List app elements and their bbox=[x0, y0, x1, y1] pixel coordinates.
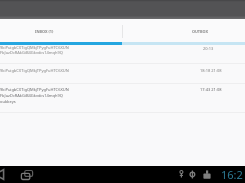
staticText: FbJuzDcRAkGiB4Gkvdcs14mqh9Q bbox=[0, 50, 63, 55]
staticText: OUTBOX bbox=[192, 29, 209, 34]
staticText: 16:2 bbox=[221, 167, 243, 182]
staticText: 9kiPuigbCXTigQMkjTPygFuHTC6XUN bbox=[0, 45, 69, 50]
staticText: 17:43 21:08 bbox=[200, 87, 222, 92]
button[interactable]: Back bbox=[0, 167, 9, 182]
staticText: 18:18 21:08 bbox=[200, 68, 222, 73]
button[interactable]: OUTBOX bbox=[122, 19, 245, 42]
button[interactable]: 9kiPuigbCXTigQMkjTPygFuHTC6XUN bbox=[0, 64, 245, 83]
staticText: INBOX (1) bbox=[35, 29, 54, 34]
staticText: oubkeys bbox=[0, 99, 16, 104]
button[interactable]: 9kiPuigbCXTigQMkjTPygFuHTC6XUN bbox=[0, 45, 245, 64]
staticText: 20:13 bbox=[203, 46, 214, 51]
other: Status bbox=[178, 169, 214, 180]
staticText: FbJuzDcRAkGiB4Gkvdcs14mqh9Q bbox=[0, 93, 63, 98]
button[interactable]: 9kiPuigbCXTigQMkjTPygFuHTC6XUN bbox=[0, 84, 245, 112]
button[interactable]: Recent apps bbox=[20, 168, 34, 182]
staticText: 9kiPuigbCXTigQMkjTPygFuHTC6XUN bbox=[0, 87, 69, 92]
button[interactable]: INBOX (1) bbox=[0, 19, 122, 42]
staticText: 9kiPuigbCXTigQMkjTPygFuHTC6XUN bbox=[0, 68, 69, 73]
